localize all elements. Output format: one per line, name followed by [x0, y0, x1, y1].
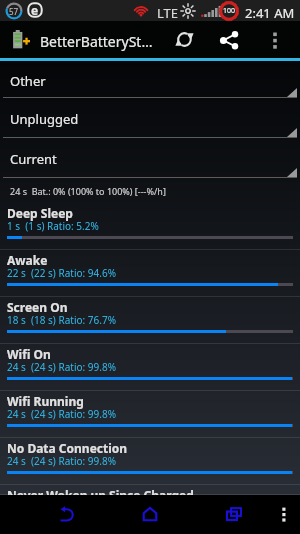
- button[interactable]: Deep Sleep: [0, 203, 300, 250]
- staticText: Awake: [7, 252, 48, 268]
- staticText: 24 s (24 s) Ratio: 99.8%: [7, 360, 116, 374]
- button[interactable]: Back: [45, 494, 89, 533]
- staticText: 1 s (1 s) Ratio: 5.2%: [7, 219, 99, 233]
- button[interactable]: Menu: [268, 494, 299, 533]
- staticText: e: [31, 2, 39, 18]
- button[interactable]: Screen On: [0, 297, 300, 344]
- staticText: Screen On: [7, 299, 68, 315]
- staticText: Deep Sleep: [7, 205, 73, 221]
- button[interactable]: Share: [211, 21, 247, 58]
- staticText: Unplugged: [10, 110, 79, 128]
- button[interactable]: Unplugged: [0, 98, 300, 138]
- staticText: Other: [10, 72, 46, 90]
- staticText: Never Woken up Since Charged: [7, 487, 194, 497]
- button[interactable]: More options: [259, 21, 291, 58]
- staticText: 18 s (18 s) Ratio: 76.7%: [7, 313, 116, 327]
- staticText: BetterBatterySt…: [40, 32, 160, 51]
- button[interactable]: Current: [0, 138, 300, 178]
- staticText: 100: [223, 6, 236, 16]
- staticText: 57: [9, 6, 19, 17]
- staticText: No Data Connection: [7, 440, 128, 456]
- button[interactable]: Refresh: [166, 21, 202, 58]
- button[interactable]: Home: [128, 494, 172, 533]
- staticText: 24 s (24 s) Ratio: 99.8%: [7, 454, 116, 468]
- staticText: LTE: [157, 4, 179, 22]
- button[interactable]: Other: [0, 61, 300, 98]
- staticText: 22 s (22 s) Ratio: 94.6%: [7, 266, 116, 280]
- button[interactable]: No Data Connection: [0, 438, 300, 485]
- staticText: 24 s (24 s) Ratio: 99.8%: [7, 501, 116, 511]
- staticText: 2:41 AM: [245, 4, 295, 22]
- staticText: Wifi On: [7, 346, 51, 362]
- button[interactable]: Recents: [212, 494, 256, 533]
- button[interactable]: Never Woken up Since Charged: [0, 485, 300, 495]
- button[interactable]: Wifi Running: [0, 391, 300, 438]
- button[interactable]: Wifi On: [0, 344, 300, 391]
- staticText: 24 s Bat.: 0% (100% to 100%) [---%/h]: [10, 185, 166, 197]
- staticText: Current: [10, 150, 57, 168]
- staticText: 24 s (24 s) Ratio: 99.8%: [7, 407, 116, 421]
- staticText: Wifi Running: [7, 393, 84, 409]
- button[interactable]: Awake: [0, 250, 300, 297]
